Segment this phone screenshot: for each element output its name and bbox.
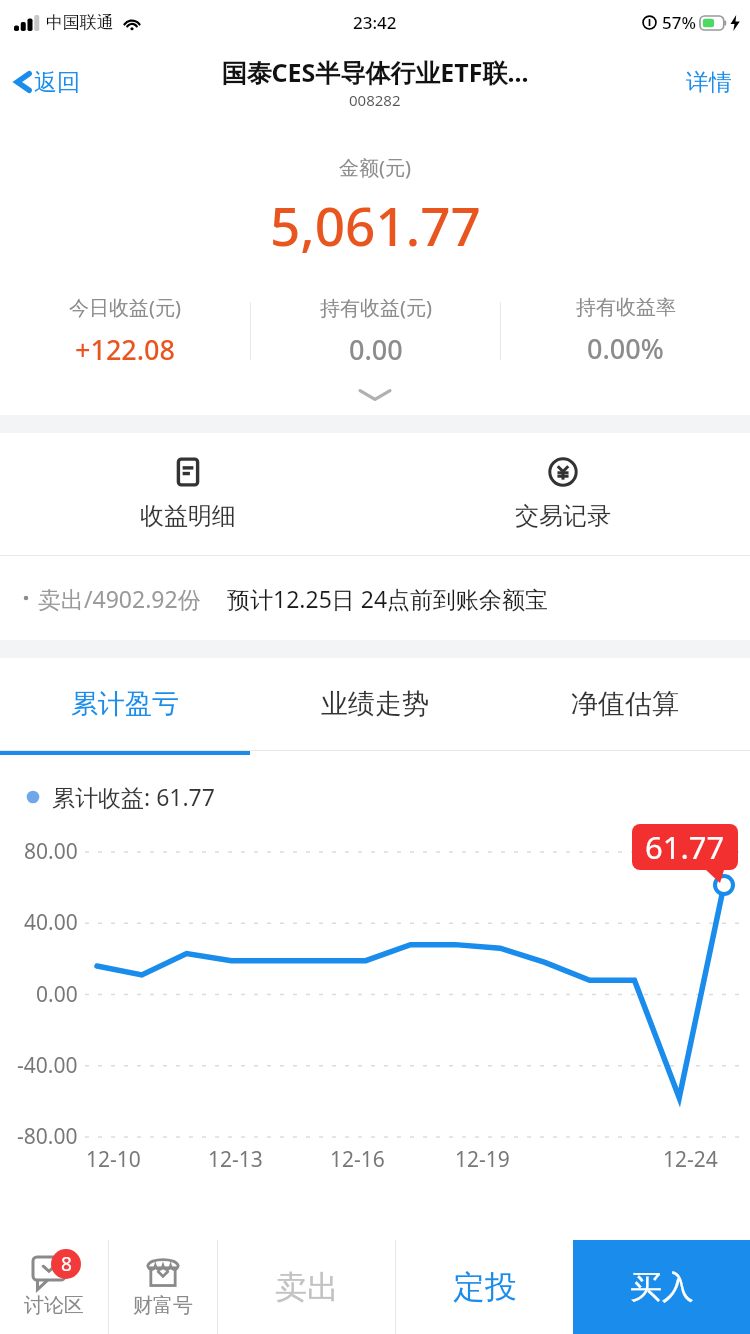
staticText: -40.00 — [17, 1051, 78, 1080]
staticText: 预计12.25日 24点前到账余额宝 — [227, 583, 549, 614]
button[interactable]: 收益明细 — [0, 433, 375, 555]
staticText: 今日收益(元) — [69, 294, 181, 321]
staticText: 详情 — [686, 68, 732, 97]
button[interactable]: 返回 — [0, 58, 86, 106]
button[interactable]: 累计盈亏 — [0, 658, 250, 750]
staticText: 12-24 — [663, 1145, 718, 1174]
button[interactable]: 净值估算 — [500, 658, 750, 750]
staticText: 买入 — [630, 1267, 694, 1307]
staticText: 业绩走势 — [321, 687, 429, 721]
staticText: 卖出/4902.92份 — [38, 583, 201, 614]
staticText: 定投 — [453, 1267, 517, 1307]
button[interactable]: 定投 — [396, 1240, 573, 1334]
staticText: +122.08 — [75, 331, 176, 368]
staticText: 国泰CES半导体行业ETF联... — [221, 55, 529, 89]
staticText: 61.77 — [645, 826, 725, 868]
staticText: 累计盈亏 — [71, 687, 179, 721]
staticText: 8 — [61, 1251, 72, 1277]
button[interactable]: 展开更多 — [340, 379, 410, 409]
button[interactable]: 详情 — [668, 58, 750, 107]
button[interactable]: 卖出 — [218, 1240, 395, 1334]
staticText: -80.00 — [17, 1122, 78, 1151]
staticText: 40.00 — [24, 908, 78, 937]
staticText: 收益明细 — [140, 501, 236, 531]
staticText: 57% — [662, 11, 696, 34]
staticText: 中国联通 — [46, 12, 114, 33]
button[interactable]: 交易记录 — [375, 433, 750, 555]
staticText: 23:42 — [353, 11, 397, 34]
staticText: 卖出 — [275, 1267, 339, 1307]
staticText: 5,061.77 — [270, 189, 481, 261]
staticText: 12-10 — [86, 1145, 141, 1174]
staticText: 80.00 — [24, 837, 78, 866]
staticText: 讨论区 — [24, 1293, 84, 1318]
button[interactable]: 卖出/4902.92份 — [0, 556, 750, 640]
button[interactable]: 今日收益(元) — [0, 287, 250, 375]
button[interactable]: 买入 — [573, 1240, 750, 1334]
staticText: 持有收益(元) — [320, 294, 432, 321]
staticText: 净值估算 — [571, 687, 679, 721]
staticText: 0.00% — [587, 330, 664, 367]
staticText: 金额(元) — [339, 154, 411, 181]
staticText: 008282 — [349, 90, 401, 110]
staticText: 持有收益率 — [576, 295, 676, 320]
button[interactable]: 8 — [0, 1240, 108, 1334]
button[interactable]: 持有收益率 — [501, 287, 750, 375]
staticText: 交易记录 — [515, 501, 611, 531]
button[interactable]: 持有收益(元) — [251, 287, 500, 375]
button[interactable]: 业绩走势 — [250, 658, 500, 750]
staticText: 财富号 — [133, 1293, 193, 1318]
staticText: 12-16 — [330, 1145, 385, 1174]
staticText: 累计收益: 61.77 — [52, 781, 215, 812]
button[interactable]: 财富号 — [109, 1240, 217, 1334]
staticText: 返回 — [34, 68, 80, 97]
staticText: 0.00 — [349, 331, 403, 368]
staticText: 12-13 — [208, 1145, 263, 1174]
staticText: 0.00 — [36, 980, 78, 1009]
staticText: 12-19 — [455, 1145, 510, 1174]
